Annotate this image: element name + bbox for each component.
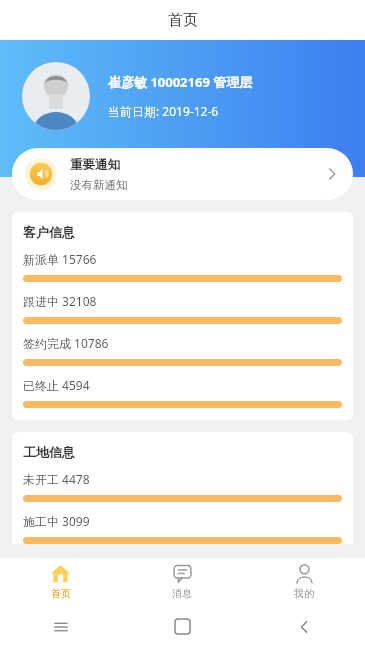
- staticText: 跟进中 32108: [23, 293, 97, 309]
- button[interactable]: Profile photo: [22, 62, 90, 130]
- staticText: 首页: [168, 11, 198, 30]
- staticText: 已终止 4594: [23, 377, 90, 393]
- button[interactable]: Back: [296, 619, 312, 635]
- button[interactable]: Home: [175, 619, 190, 634]
- staticText: 客户信息: [23, 224, 75, 240]
- button[interactable]: 消息: [121, 558, 243, 605]
- button[interactable]: Recent apps: [53, 619, 69, 635]
- button[interactable]: 首页: [0, 558, 121, 605]
- staticText: 工地信息: [23, 444, 75, 460]
- staticText: 消息: [172, 587, 192, 600]
- staticText: 崔彦敏 10002169 管理层: [108, 73, 253, 91]
- staticText: 施工中 3099: [23, 513, 90, 529]
- staticText: 没有新通知: [70, 178, 128, 192]
- staticText: 签约完成 10786: [23, 335, 109, 351]
- staticText: 新派单 15766: [23, 251, 97, 267]
- staticText: 未开工 4478: [23, 471, 90, 487]
- button[interactable]: 我的: [243, 558, 365, 605]
- staticText: 我的: [294, 587, 314, 600]
- staticText: 首页: [51, 587, 71, 600]
- staticText: 当前日期: 2019-12-6: [108, 103, 219, 119]
- staticText: 重要通知: [70, 157, 120, 173]
- button[interactable]: 重要通知: [12, 148, 353, 200]
